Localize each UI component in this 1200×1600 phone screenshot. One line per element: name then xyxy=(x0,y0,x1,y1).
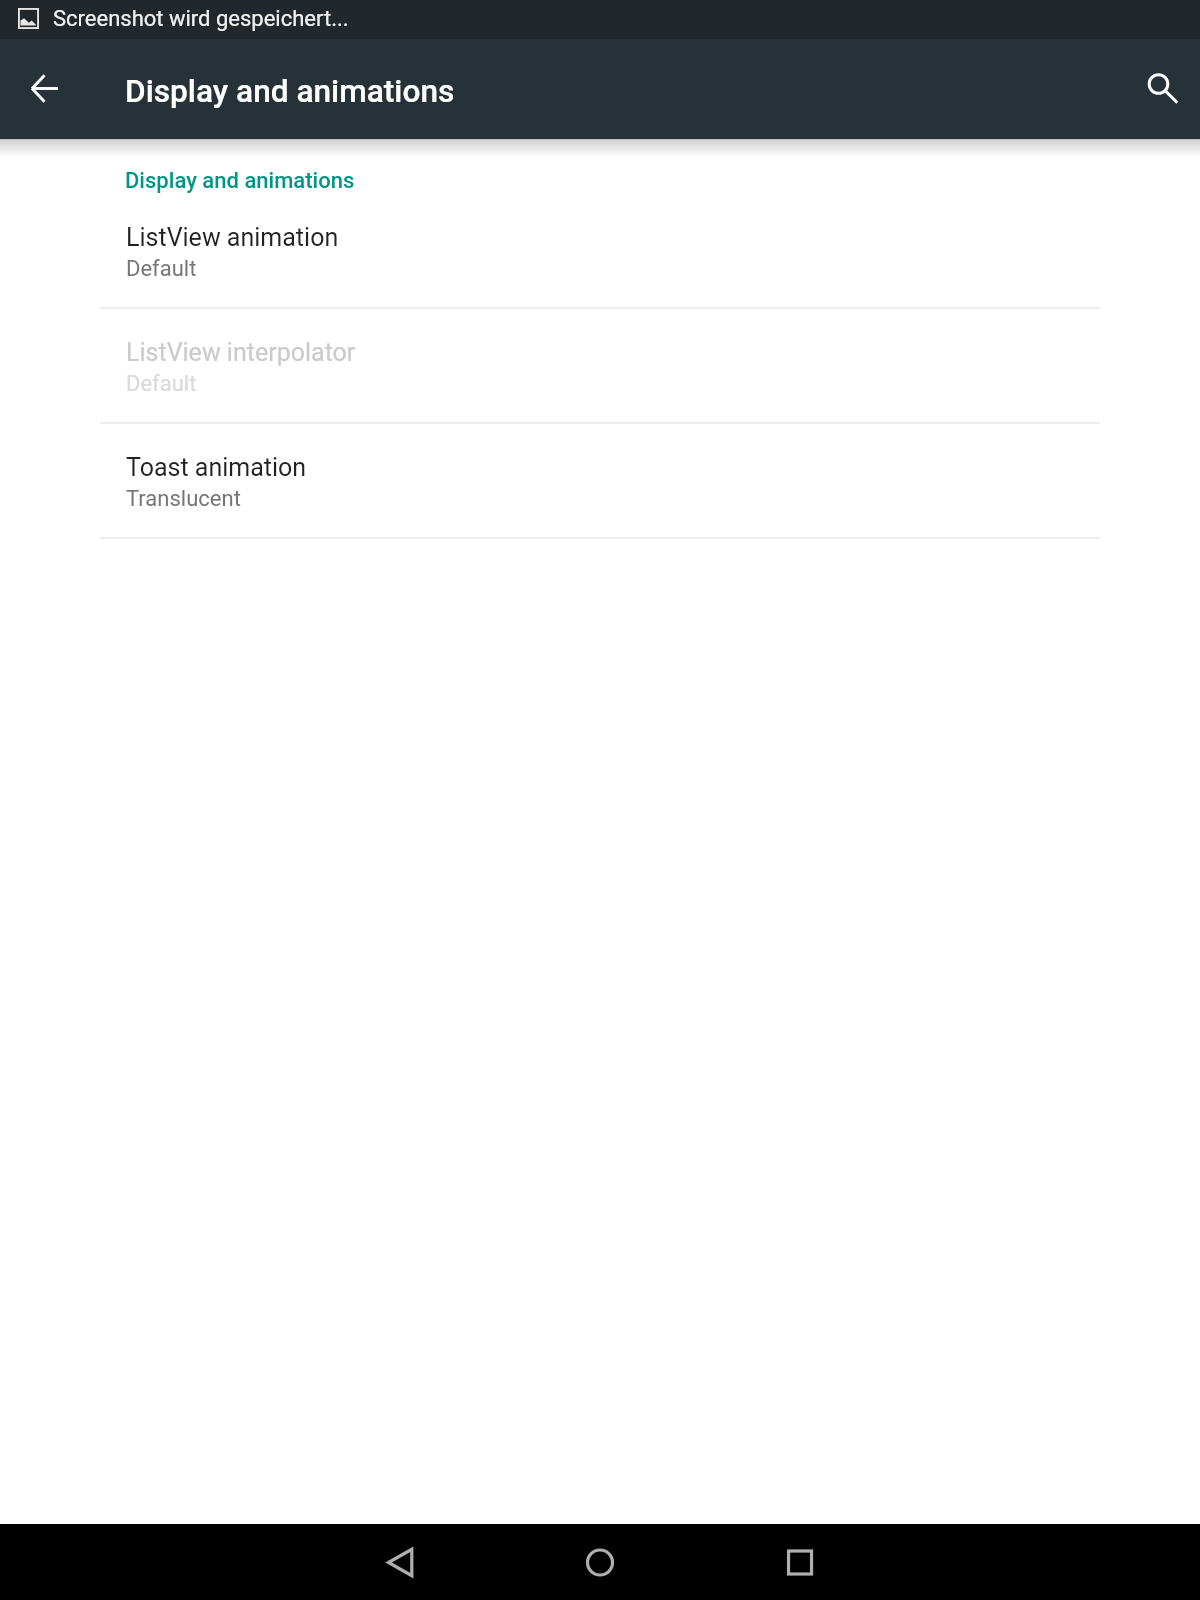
staticText: Display and animations xyxy=(125,168,355,194)
staticText: Default xyxy=(126,256,197,282)
button[interactable]: ListView animation xyxy=(0,192,1200,307)
staticText: Screenshot wird gespeichert... xyxy=(53,6,349,32)
button[interactable]: Search xyxy=(1118,44,1200,132)
staticText: ListView interpolator xyxy=(126,338,356,367)
staticText: ListView animation xyxy=(126,223,339,252)
staticText: Default xyxy=(126,371,197,397)
button[interactable]: Back xyxy=(0,44,88,132)
button[interactable]: ListView interpolator xyxy=(0,307,1200,422)
staticText: Translucent xyxy=(126,486,241,512)
button[interactable]: Toast animation xyxy=(0,422,1200,537)
staticText: Display and animations xyxy=(125,73,455,110)
staticText: Toast animation xyxy=(126,453,307,482)
